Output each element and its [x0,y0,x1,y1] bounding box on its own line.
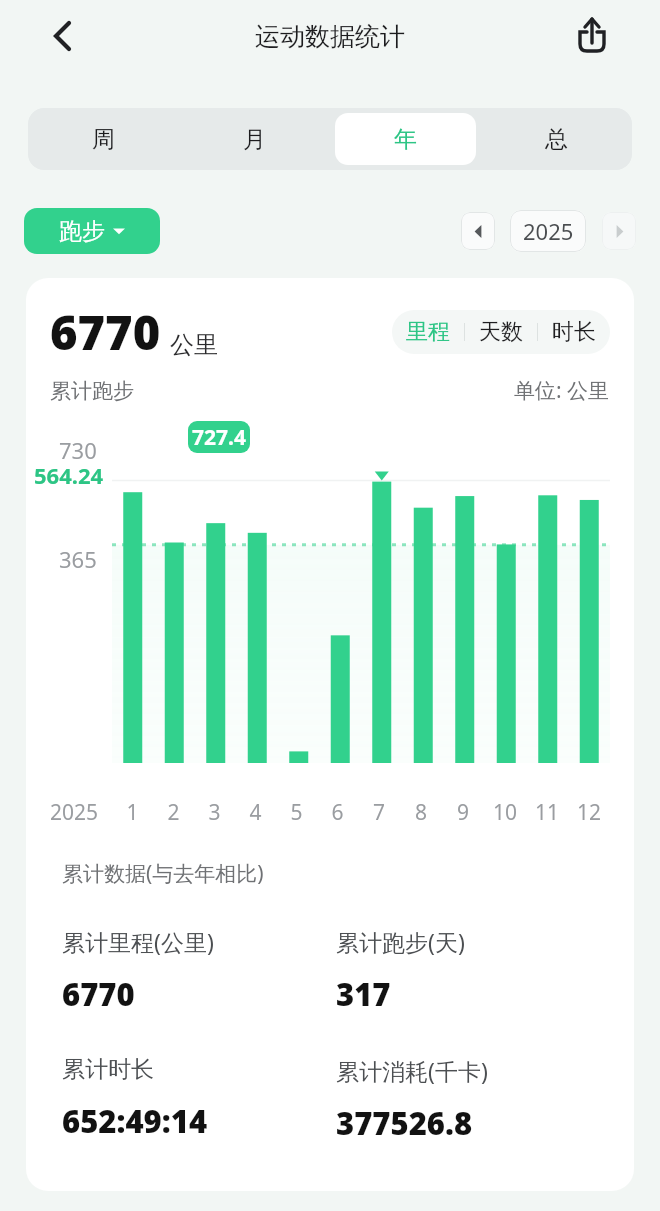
staticText: 累计跑步(天) [336,926,465,957]
staticText: 10 [484,798,526,827]
staticText: 累计数据(与去年相比) [62,859,264,888]
staticText: 4 [235,798,276,827]
button[interactable]: 里程 [406,318,450,346]
button[interactable]: 时长 [552,318,596,346]
button[interactable]: 天数 [479,318,523,346]
staticText: 运动数据统计 [255,21,405,52]
staticText: 累计消耗(千卡) [336,1055,488,1086]
staticText: 里程 [406,318,450,346]
staticText: 7 [358,798,400,827]
staticText: 2 [153,798,194,827]
staticText: 6770 [62,973,135,1015]
staticText: 727.4 [192,423,246,452]
staticText: 累计时长 [62,1055,154,1084]
staticText: 总 [545,125,568,154]
button[interactable]: Previous year [461,212,495,250]
button[interactable]: 总 [486,113,627,165]
staticText: 9 [442,798,484,827]
staticText: 377526.8 [336,1102,473,1144]
staticText: 6 [317,798,358,827]
button[interactable]: 跑步 [24,208,160,254]
staticText: 5 [276,798,317,827]
staticText: 累计里程(公里) [62,926,214,957]
staticText: 3 [194,798,235,827]
staticText: 12 [568,798,610,827]
button[interactable]: 2025 [510,210,586,252]
button[interactable]: 周 [33,113,174,165]
button[interactable]: Back [38,12,86,60]
staticText: 公里 [170,330,218,360]
staticText: 跑步 [59,217,105,246]
staticText: 1 [112,798,153,827]
staticText: 365 [59,544,97,574]
staticText: 652:49:14 [62,1100,208,1142]
staticText: 单位: 公里 [514,376,610,405]
staticText: 8 [400,798,442,827]
button[interactable]: 年 [335,113,476,165]
staticText: 时长 [552,318,596,346]
button[interactable]: Share [568,12,616,60]
button[interactable]: 月 [184,113,325,165]
staticText: 月 [243,125,266,154]
staticText: 6770 [50,300,161,364]
staticText: 天数 [479,318,523,346]
staticText: 周 [92,125,115,154]
staticText: 累计跑步 [50,378,134,404]
staticText: 2025 [50,798,108,827]
staticText: 564.24 [34,460,104,490]
staticText: 730 [59,435,97,465]
staticText: 年 [394,125,417,154]
staticText: 317 [336,973,391,1015]
button[interactable]: Next year [602,212,636,250]
staticText: 2025 [523,216,574,246]
staticText: 11 [526,798,568,827]
